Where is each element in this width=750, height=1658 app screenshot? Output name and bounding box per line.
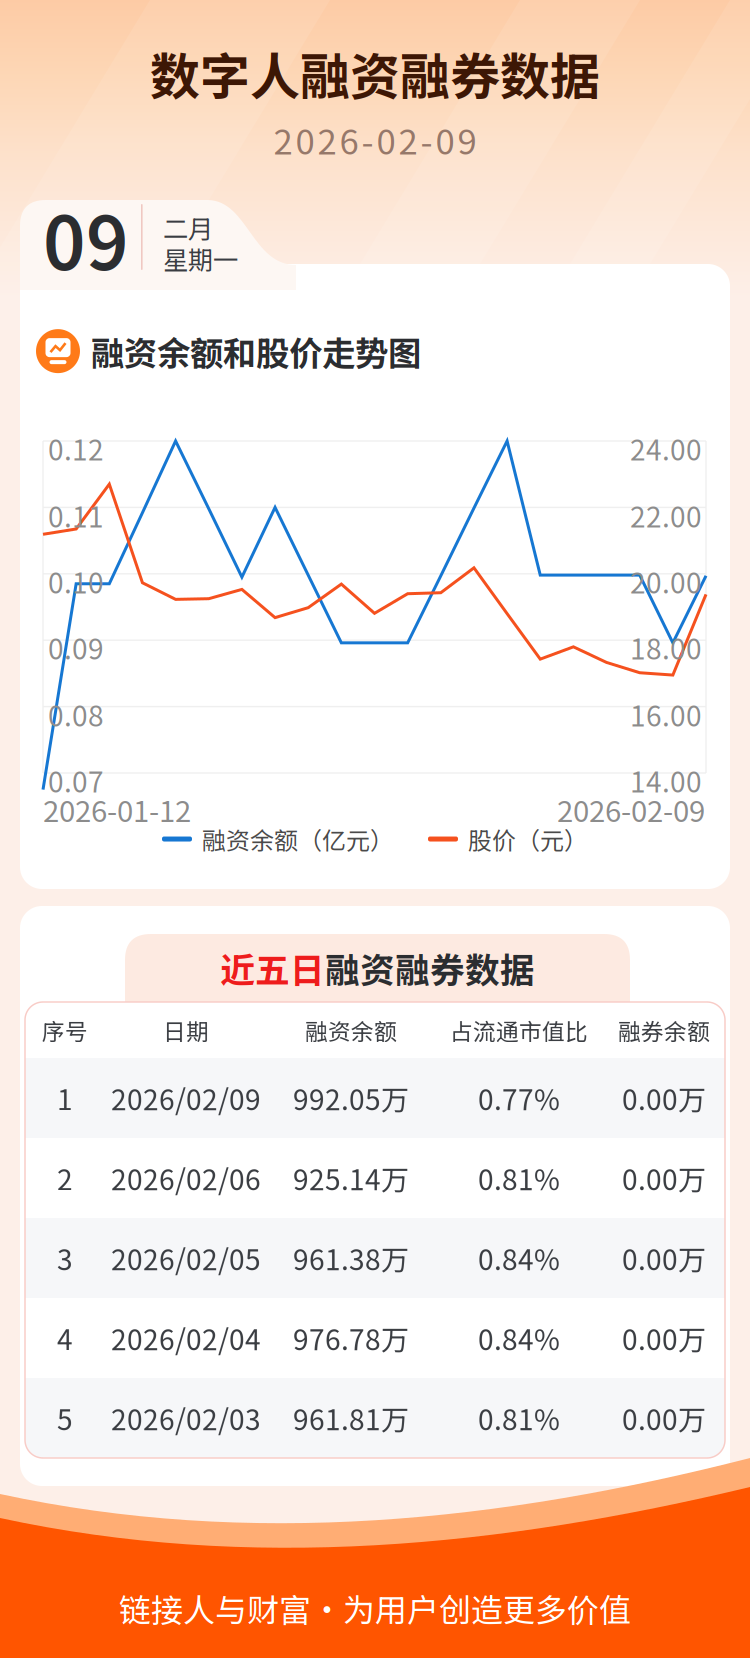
staticText: 融券余额 — [618, 1014, 710, 1046]
staticText: 占流通市值比 — [450, 1014, 588, 1046]
staticText: 日期 — [163, 1014, 209, 1046]
staticText: 961.38万 — [293, 1238, 409, 1278]
staticText: 0.00万 — [622, 1398, 706, 1438]
staticText: 融资余额 — [305, 1014, 397, 1046]
staticText: 0.11 — [48, 495, 104, 535]
staticText: 2026-02-09 — [273, 114, 476, 165]
staticText: 992.05万 — [293, 1078, 409, 1118]
staticText: 5 — [57, 1398, 73, 1438]
staticText: 0.07 — [48, 760, 104, 800]
staticText: 0.00万 — [622, 1238, 706, 1278]
staticText: 序号 — [42, 1014, 88, 1046]
staticText: 链接人与财富·为用户创造更多价值 — [119, 1585, 631, 1631]
staticText: 0.12 — [48, 428, 104, 468]
staticText: 16.00 — [630, 694, 702, 734]
staticText: 数字人融资融券数据 — [150, 37, 600, 109]
staticText: 0.77% — [478, 1078, 560, 1118]
staticText: 0.09 — [48, 627, 104, 667]
staticText: 2026/02/09 — [111, 1078, 261, 1118]
staticText: 3 — [57, 1238, 73, 1278]
staticText: 2026/02/05 — [111, 1238, 261, 1278]
staticText: 09 — [43, 185, 129, 291]
staticText: 24.00 — [630, 428, 702, 468]
staticText: 18.00 — [630, 627, 702, 667]
staticText: 近五日 — [220, 943, 325, 993]
staticText: 0.81% — [478, 1398, 560, 1438]
staticText: 0.08 — [48, 694, 104, 734]
staticText: 2026-02-09 — [557, 788, 705, 830]
staticText: 融资融券数据 — [325, 943, 535, 993]
staticText: 976.78万 — [293, 1318, 409, 1358]
staticText: 星期一 — [163, 240, 238, 277]
staticText: 2026/02/03 — [111, 1398, 261, 1438]
staticText: 2 — [57, 1158, 73, 1198]
staticText: 融资余额和股价走势图 — [91, 327, 421, 375]
staticText: 14.00 — [630, 760, 702, 800]
staticText: 融资余额（亿元） — [202, 822, 394, 856]
staticText: 2026/02/04 — [111, 1318, 261, 1358]
staticText: 0.84% — [478, 1238, 560, 1278]
staticText: 0.00万 — [622, 1158, 706, 1198]
staticText: 925.14万 — [293, 1158, 409, 1198]
staticText: 0.00万 — [622, 1318, 706, 1358]
staticText: 二月 — [163, 209, 213, 246]
staticText: 0.84% — [478, 1318, 560, 1358]
staticText: 961.81万 — [293, 1398, 409, 1438]
staticText: 22.00 — [630, 495, 702, 535]
staticText: 0.81% — [478, 1158, 560, 1198]
staticText: 0.00万 — [622, 1078, 706, 1118]
staticText: 股价（元） — [468, 822, 588, 856]
staticText: 4 — [57, 1318, 73, 1358]
staticText: 0.10 — [48, 561, 104, 601]
staticText: 2026-01-12 — [43, 788, 191, 830]
staticText: 20.00 — [630, 561, 702, 601]
staticText: 2026/02/06 — [111, 1158, 261, 1198]
staticText: 1 — [57, 1078, 73, 1118]
